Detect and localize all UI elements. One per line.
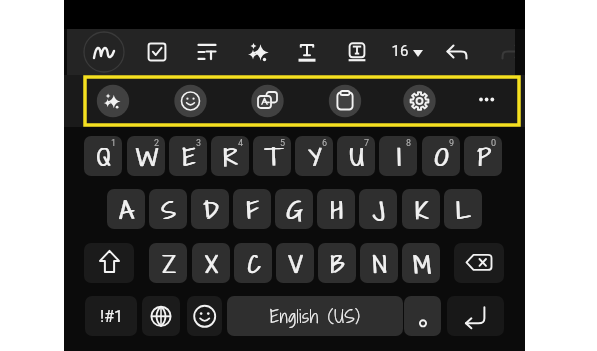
button[interactable]: K [402,189,440,229]
staticText: Z [163,250,176,281]
button[interactable]: T [253,136,291,176]
button[interactable]: B [318,243,356,283]
button[interactable]: Clipboard [326,82,364,120]
staticText: M [414,250,432,281]
staticText: H [331,196,343,227]
button[interactable]: English (US) [227,296,403,336]
staticText: H [330,196,342,227]
button[interactable]: G [275,189,313,229]
staticText: !#1 [100,307,123,326]
staticText: 5 [280,138,286,149]
staticText: 16 [390,42,410,62]
button[interactable]: Handwriting [83,29,125,71]
button[interactable]: Settings [401,82,439,120]
staticText: X [206,250,218,281]
button[interactable]: Language [142,296,180,336]
button[interactable]: Paragraph style [186,29,228,71]
staticText: D [203,196,218,227]
staticText: B [330,250,344,281]
staticText: K [415,196,428,227]
button[interactable]: Y [295,136,333,176]
button[interactable]: X [192,243,230,283]
staticText: T [265,143,282,174]
button[interactable]: M [402,243,440,283]
staticText: F [247,196,259,227]
staticText: English (US) [270,304,361,329]
staticText: J [372,196,384,227]
staticText: U [350,143,364,174]
button[interactable]: N [360,243,398,283]
button[interactable]: S [149,189,187,229]
staticText: R [224,143,238,174]
staticText: C [248,250,261,281]
staticText: F [246,196,258,227]
button[interactable]: Checkbox [136,29,178,71]
button[interactable]: Translate [249,82,287,120]
staticText: B [331,250,345,281]
staticText: N [372,250,386,281]
staticText: O [434,143,448,174]
staticText: 2 [154,138,160,149]
button[interactable]: C [234,243,272,283]
staticText: T [264,143,280,174]
staticText: 9 [449,138,455,149]
button[interactable]: Text format [286,29,328,71]
staticText: A [119,196,133,227]
staticText: Q [97,143,111,174]
button[interactable]: Backspace [454,243,504,283]
button[interactable]: J [359,189,397,229]
staticText: W [136,143,159,174]
staticText: X [205,250,217,281]
button[interactable]: More options [467,82,505,120]
button[interactable]: P [464,136,502,176]
button[interactable]: R [211,136,249,176]
button[interactable]: Period [404,296,441,336]
button[interactable]: O [422,136,460,176]
staticText: 0 [491,138,497,149]
button[interactable]: D [191,189,229,229]
staticText: G [286,196,302,227]
button[interactable]: Text box [336,29,378,71]
staticText: Q [96,143,110,174]
staticText: 1 [111,138,117,149]
button[interactable]: E [169,136,207,176]
button[interactable]: Shift [84,243,134,283]
staticText: Z [162,250,175,281]
button[interactable]: A [107,189,145,229]
staticText: U [349,143,363,174]
staticText: G [287,196,304,227]
staticText: I [398,143,401,174]
button[interactable]: Emoji [172,82,210,120]
button[interactable]: Symbols [85,296,137,336]
button[interactable]: W [127,136,165,176]
staticText: E [183,143,196,174]
button[interactable]: I [379,136,417,176]
button[interactable]: H [317,189,355,229]
staticText: A [120,196,134,227]
button[interactable]: Font size 16 [385,29,427,71]
button[interactable]: Smart compose [94,82,132,120]
staticText: Y [309,143,322,174]
staticText: Y [308,143,321,174]
staticText: 3 [196,138,202,149]
staticText: 8 [406,138,412,149]
staticText: I [397,143,400,174]
staticText: J [373,196,385,227]
button[interactable]: Q [84,136,122,176]
staticText: M [412,250,430,281]
button[interactable]: Undo [436,29,478,71]
button[interactable]: L [444,189,482,229]
staticText: D [204,196,219,227]
button[interactable]: AI assist [238,29,280,71]
staticText: N [373,250,387,281]
staticText: V [289,250,303,281]
staticText: P [477,143,490,174]
staticText: 6 [322,138,328,149]
button[interactable]: V [276,243,314,283]
button[interactable]: U [337,136,375,176]
button[interactable]: Z [149,243,187,283]
button[interactable]: F [233,189,271,229]
button[interactable]: Emoji [187,296,222,336]
staticText: O [435,143,449,174]
button[interactable]: Enter [447,296,504,336]
